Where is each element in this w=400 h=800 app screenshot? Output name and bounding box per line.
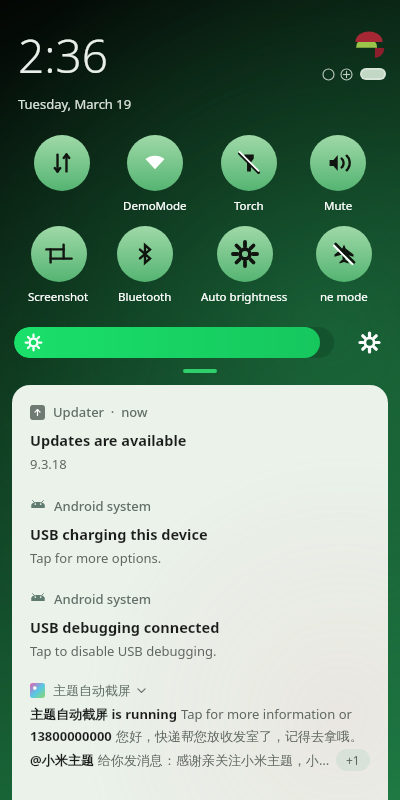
button[interactable]: Updater · now [30,403,370,473]
button[interactable] [34,135,90,191]
button[interactable]: Screenshot [31,226,87,282]
staticText: Android system [54,497,152,515]
staticText: USB debugging connected [30,617,220,637]
staticText: Tap for more options. [30,549,162,567]
staticText: Tap for more information or t… [181,705,370,723]
staticText: Screenshot [28,289,89,305]
staticText: USB charging this device [30,524,208,544]
button[interactable]: Profile [352,28,386,62]
button[interactable]: Torch [221,135,277,191]
button[interactable]: Mute [310,135,366,191]
button[interactable]: DemoMode [127,135,183,191]
staticText: 主题自动截屏 is running [30,705,177,723]
staticText: +1 [346,752,360,768]
staticText: Bluetooth [118,289,172,305]
button[interactable]: +1 [346,752,360,768]
staticText: 2:36 [18,24,109,87]
staticText: @小米主题 [30,751,94,769]
staticText: DemoMode [123,198,187,214]
staticText: 13800000000 [30,727,112,745]
staticText: Auto brightness [201,289,288,305]
staticText: 您好，快递帮您放收发室了，记得去拿哦。 [116,728,363,744]
staticText: Mute [324,198,353,214]
staticText: Tuesday, March 19 [18,95,132,113]
staticText: 9.3.18 [30,455,67,473]
button[interactable]: Bluetooth [117,226,173,282]
button[interactable]: Android system [30,497,370,567]
staticText: Torch [234,198,264,214]
button[interactable]: Settings [352,325,386,359]
staticText: Updater · now [53,403,148,421]
staticText: Updates are available [30,430,187,450]
button[interactable]: Android system [30,590,370,660]
staticText: 给你发消息：感谢亲关注小米主题，小… [98,751,330,769]
button[interactable]: ne mode [316,226,372,282]
staticText: ne mode [320,289,368,305]
button[interactable]: Brightness [14,327,334,358]
button[interactable]: 主题自动截屏 [30,682,370,771]
button[interactable]: Auto brightness [217,226,273,282]
staticText: Tap to disable USB debugging. [30,642,217,660]
staticText: 主题自动截屏 [53,682,131,698]
staticText: Android system [54,590,152,608]
